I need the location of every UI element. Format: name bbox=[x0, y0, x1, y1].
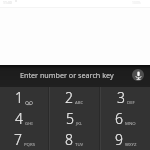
staticText: WXYZ bbox=[125, 141, 137, 147]
button[interactable]: 5 bbox=[50, 108, 99, 129]
button[interactable]: 8 bbox=[50, 129, 99, 150]
staticText: 3 bbox=[117, 88, 125, 107]
staticText: Enter number or search key bbox=[20, 70, 114, 80]
button[interactable]: 9 bbox=[101, 129, 150, 150]
button[interactable]: Voice search bbox=[132, 69, 144, 81]
staticText: DEF bbox=[127, 99, 135, 105]
staticText: 8 bbox=[65, 130, 73, 149]
staticText: MNO bbox=[125, 120, 136, 126]
staticText: 7 bbox=[14, 130, 22, 149]
staticText: JKL bbox=[76, 120, 83, 126]
staticText: 4 bbox=[15, 109, 23, 128]
staticText: 5 bbox=[66, 109, 74, 128]
staticText: 100% bbox=[132, 0, 141, 5]
button[interactable]: 4 bbox=[0, 108, 48, 129]
button[interactable]: 1 bbox=[0, 87, 48, 108]
staticText: GHI bbox=[25, 120, 33, 126]
button[interactable]: 7 bbox=[0, 129, 48, 150]
button[interactable]: Enter number or search key bbox=[0, 65, 150, 87]
button[interactable]: 3 bbox=[101, 87, 150, 108]
button[interactable]: 6 bbox=[101, 108, 150, 129]
staticText: 1 bbox=[15, 88, 23, 107]
staticText: TUV bbox=[75, 141, 84, 147]
staticText: 2 bbox=[65, 88, 73, 107]
staticText: 11:30 bbox=[3, 0, 12, 5]
button[interactable]: 2 bbox=[50, 87, 99, 108]
staticText: ABC bbox=[75, 99, 84, 105]
staticText: 6 bbox=[115, 109, 123, 128]
staticText: 9 bbox=[115, 130, 123, 149]
staticText: PQRS bbox=[24, 141, 35, 147]
